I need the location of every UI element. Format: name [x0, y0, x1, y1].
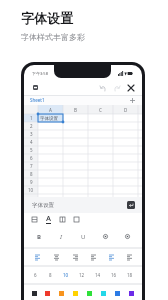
staticText: B: [74, 107, 77, 113]
button[interactable]: Option 1: [43, 267, 58, 283]
button[interactable]: Option 5: [106, 267, 122, 283]
button[interactable]: Tab 3: [69, 213, 83, 226]
button[interactable]: Option 3: [74, 267, 90, 283]
button[interactable]: Option 4: [102, 249, 120, 265]
button[interactable]: Option 0: [28, 285, 41, 300]
staticText: 16: [111, 272, 117, 278]
staticText: 下午3:58: [32, 71, 48, 76]
button[interactable]: Redo: [111, 82, 122, 93]
staticText: I: [60, 233, 62, 241]
staticText: 14: [95, 272, 101, 278]
button[interactable]: Option 6: [122, 267, 138, 283]
staticText: 8: [49, 272, 52, 278]
staticText: 5: [30, 147, 33, 153]
button[interactable]: Option 2: [72, 226, 94, 247]
staticText: 字体设置: [21, 10, 73, 26]
button[interactable]: Tab 0: [27, 213, 41, 226]
staticText: 4: [30, 139, 33, 145]
button[interactable]: Option 3: [68, 285, 82, 300]
staticText: 9: [30, 179, 33, 185]
button[interactable]: Document: [33, 85, 38, 90]
button[interactable]: Add sheet: [128, 96, 136, 104]
button[interactable]: Undo: [97, 82, 108, 93]
button[interactable]: Option 5: [120, 249, 138, 265]
button[interactable]: Option 0: [28, 249, 47, 265]
button[interactable]: Option 5: [96, 285, 110, 300]
button[interactable]: Option 4: [82, 285, 96, 300]
button[interactable]: Option 1: [50, 226, 72, 247]
button[interactable]: Option 4: [90, 267, 106, 283]
button[interactable]: Option 6: [110, 285, 124, 300]
button[interactable]: Option 0: [28, 267, 43, 283]
staticText: A: [49, 107, 52, 113]
staticText: 10: [63, 272, 69, 278]
staticText: 8: [30, 171, 33, 177]
staticText: 3: [30, 131, 33, 137]
button[interactable]: Option 2: [58, 267, 74, 283]
staticText: 6: [34, 272, 37, 278]
staticText: 字体设置: [32, 202, 54, 209]
staticText: U: [81, 233, 86, 241]
staticText: Sheet1: [30, 97, 45, 103]
button[interactable]: Option 2: [66, 249, 84, 265]
staticText: 字体设置: [40, 116, 58, 122]
button[interactable]: Option 3: [84, 249, 102, 265]
button[interactable]: Option 3: [94, 226, 116, 247]
staticText: 12: [79, 272, 85, 278]
staticText: D: [124, 107, 128, 113]
button[interactable]: Enter: [127, 201, 135, 209]
button[interactable]: Tab 2: [55, 213, 69, 226]
staticText: C: [99, 107, 102, 113]
staticText: 2: [30, 123, 33, 129]
staticText: 字体样式丰富多彩: [21, 32, 85, 42]
staticText: 18: [127, 272, 133, 278]
button[interactable]: Option 1: [41, 285, 54, 300]
button[interactable]: Option 7: [124, 285, 138, 300]
staticText: 10: [28, 187, 34, 193]
button[interactable]: Option 1: [47, 249, 66, 265]
staticText: 6: [30, 155, 33, 161]
staticText: 1: [30, 115, 33, 121]
button[interactable]: Option 4: [116, 226, 138, 247]
button[interactable]: Option 0: [28, 226, 50, 247]
button[interactable]: Tab 1: [41, 213, 55, 226]
button[interactable]: Close: [125, 82, 136, 93]
button[interactable]: Option 2: [54, 285, 68, 300]
staticText: 7: [30, 163, 33, 169]
staticText: B: [37, 233, 41, 241]
